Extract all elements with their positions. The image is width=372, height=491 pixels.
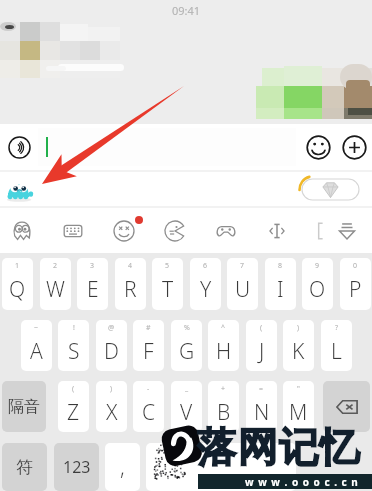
button[interactable]: Backspace xyxy=(323,381,370,432)
button[interactable]: Download xyxy=(326,208,368,253)
button[interactable]: 8 xyxy=(265,258,296,310)
staticText: ) xyxy=(297,323,300,333)
staticText: T xyxy=(162,275,174,304)
staticText: 落网记忆 xyxy=(196,422,360,472)
staticText: ( xyxy=(260,323,263,333)
button[interactable]: # xyxy=(133,320,164,371)
staticText: L xyxy=(331,337,342,366)
staticText: 7 xyxy=(240,261,245,271)
button[interactable]: 2 xyxy=(40,258,71,310)
staticText: ~ xyxy=(34,323,39,333)
staticText: N xyxy=(254,398,270,427)
button[interactable]: 0 xyxy=(340,258,371,310)
staticText: ) xyxy=(110,384,113,394)
button[interactable]: 9 xyxy=(302,258,333,310)
staticText: % xyxy=(184,323,190,333)
staticText: = xyxy=(259,384,264,394)
button[interactable]: 符 xyxy=(2,443,47,491)
button[interactable]: ) xyxy=(96,381,127,432)
staticText: G xyxy=(179,337,195,366)
staticText: 隔音 xyxy=(8,397,40,417)
staticText: 符 xyxy=(16,457,33,478)
button[interactable]: + xyxy=(208,381,239,432)
button[interactable]: ) xyxy=(283,320,314,371)
staticText: W xyxy=(46,275,65,304)
staticText: O xyxy=(309,275,326,304)
button[interactable]: Games xyxy=(205,208,247,253)
staticText: F xyxy=(143,337,154,366)
staticText: 6 xyxy=(203,261,208,271)
staticText: 8 xyxy=(278,261,283,271)
button[interactable]: ? xyxy=(321,320,352,371)
staticText: J xyxy=(259,337,265,366)
button[interactable]: 1 xyxy=(2,258,33,310)
button[interactable]: _ xyxy=(171,381,202,432)
button[interactable]: @ xyxy=(96,320,127,371)
staticText: U xyxy=(235,275,251,304)
button[interactable]: 5 xyxy=(152,258,183,310)
staticText: X xyxy=(106,398,118,427)
button[interactable]: Gem xyxy=(301,178,360,201)
staticText: 1 xyxy=(15,261,20,271)
button[interactable]: 3 xyxy=(77,258,108,310)
staticText: 123 xyxy=(63,456,91,478)
button[interactable]: More xyxy=(336,129,372,165)
staticText: Q xyxy=(9,275,26,304)
button[interactable]: Mascot sticker xyxy=(5,175,35,205)
button[interactable]: ( xyxy=(246,320,277,371)
button[interactable]: Keyboard xyxy=(52,208,94,253)
staticText: " xyxy=(297,384,300,394)
button[interactable]: Custom emoji xyxy=(154,208,196,253)
button[interactable]: Emoji xyxy=(103,208,145,253)
button[interactable]: ~ xyxy=(21,320,52,371)
staticText: I xyxy=(277,275,284,304)
button[interactable]: Ghost emoji xyxy=(1,208,43,253)
staticText: S xyxy=(68,337,80,366)
staticText: Z xyxy=(67,398,80,427)
staticText: H xyxy=(216,337,232,366)
staticText: 3 xyxy=(90,261,95,271)
staticText: ! xyxy=(73,323,75,333)
button[interactable]: - xyxy=(133,381,164,432)
staticText: _ xyxy=(185,384,189,394)
button[interactable]: 4 xyxy=(115,258,146,310)
staticText: 9 xyxy=(315,261,320,271)
staticText: + xyxy=(221,384,226,394)
staticText: 5 xyxy=(165,261,170,271)
staticText: A xyxy=(30,337,43,366)
staticText: E xyxy=(87,275,99,304)
button[interactable]: Space xyxy=(146,443,296,491)
button[interactable]: % xyxy=(171,320,202,371)
staticText: # xyxy=(146,323,151,333)
button[interactable]: ^ xyxy=(208,320,239,371)
button[interactable]: 7 xyxy=(227,258,258,310)
staticText: w w w . o o o c . c n xyxy=(245,475,359,489)
staticText: 4 xyxy=(128,261,133,271)
button[interactable]: " xyxy=(283,381,314,432)
button[interactable]: 6 xyxy=(190,258,221,310)
staticText: ^ xyxy=(221,323,226,333)
button[interactable]: Emoji xyxy=(300,129,336,165)
staticText: ( xyxy=(72,384,75,394)
button[interactable]: , xyxy=(105,443,140,491)
button[interactable]: 123 xyxy=(54,443,99,491)
staticText: @ xyxy=(108,323,115,333)
staticText: D xyxy=(104,337,119,366)
button[interactable]: Brackets xyxy=(299,208,341,253)
button[interactable]: = xyxy=(246,381,277,432)
button[interactable]: 隔音 xyxy=(2,381,46,432)
staticText: Y xyxy=(200,275,212,304)
button[interactable]: Text tool xyxy=(256,208,298,253)
staticText: - xyxy=(147,384,150,394)
staticText: R xyxy=(124,275,137,304)
button[interactable]: ( xyxy=(58,381,89,432)
button[interactable]: ! xyxy=(58,320,89,371)
staticText: 2 xyxy=(53,261,58,271)
staticText: ? xyxy=(335,323,339,333)
button[interactable]: Message input xyxy=(38,128,296,166)
staticText: 0 xyxy=(353,261,358,271)
button[interactable]: Voice input xyxy=(2,130,36,164)
staticText: V xyxy=(180,398,193,427)
staticText: K xyxy=(292,337,305,366)
staticText: 09:41 xyxy=(172,3,201,18)
